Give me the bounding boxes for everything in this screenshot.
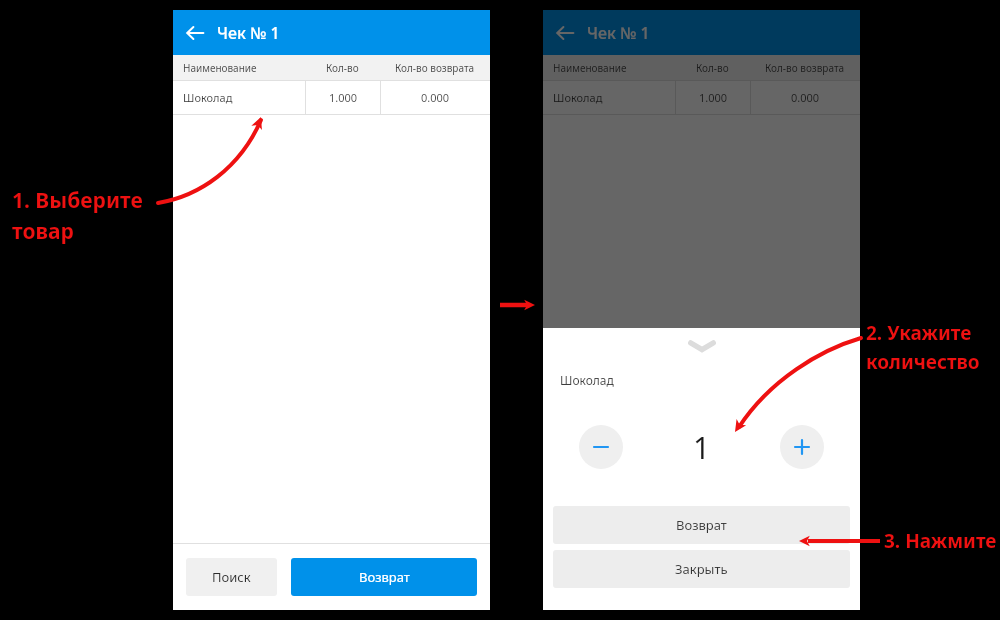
button[interactable]: Закрыть: [553, 550, 850, 588]
staticText: Чек № 1: [217, 22, 280, 44]
staticText: Кол-во возврата: [765, 61, 845, 75]
button[interactable]: Уменьшить: [579, 425, 623, 469]
staticText: Поиск: [212, 568, 251, 586]
button[interactable]: Свернуть: [543, 328, 860, 364]
staticText: 3. Нажмите: [884, 528, 997, 554]
staticText: Наименование: [553, 61, 627, 75]
staticText: Кол-во: [326, 61, 359, 75]
button[interactable]: Поиск: [186, 558, 277, 596]
staticText: Закрыть: [675, 560, 728, 578]
button[interactable]: Назад: [173, 11, 217, 55]
staticText: 1. Выберите: [12, 186, 143, 215]
staticText: Шоколад: [553, 90, 603, 105]
staticText: Чек № 1: [587, 22, 650, 44]
staticText: Возврат: [359, 568, 410, 586]
staticText: Возврат: [676, 516, 727, 534]
staticText: 1: [693, 427, 711, 468]
staticText: 1.000: [329, 90, 358, 105]
staticText: количество: [866, 349, 980, 375]
staticText: Шоколад: [183, 90, 233, 105]
staticText: 0.000: [421, 90, 450, 105]
button[interactable]: Возврат: [291, 558, 477, 596]
staticText: товар: [12, 217, 74, 246]
button[interactable]: Назад: [543, 11, 587, 55]
staticText: Кол-во возврата: [395, 61, 475, 75]
button[interactable]: Шоколад: [543, 81, 860, 114]
staticText: Наименование: [183, 61, 257, 75]
staticText: Кол-во: [696, 61, 729, 75]
staticText: Шоколад: [560, 372, 614, 388]
button[interactable]: Шоколад: [173, 81, 490, 114]
staticText: 0.000: [791, 90, 820, 105]
staticText: 2. Укажите: [866, 320, 972, 346]
button[interactable]: Увеличить: [780, 425, 824, 469]
button[interactable]: Возврат: [553, 506, 850, 544]
staticText: 1.000: [699, 90, 728, 105]
